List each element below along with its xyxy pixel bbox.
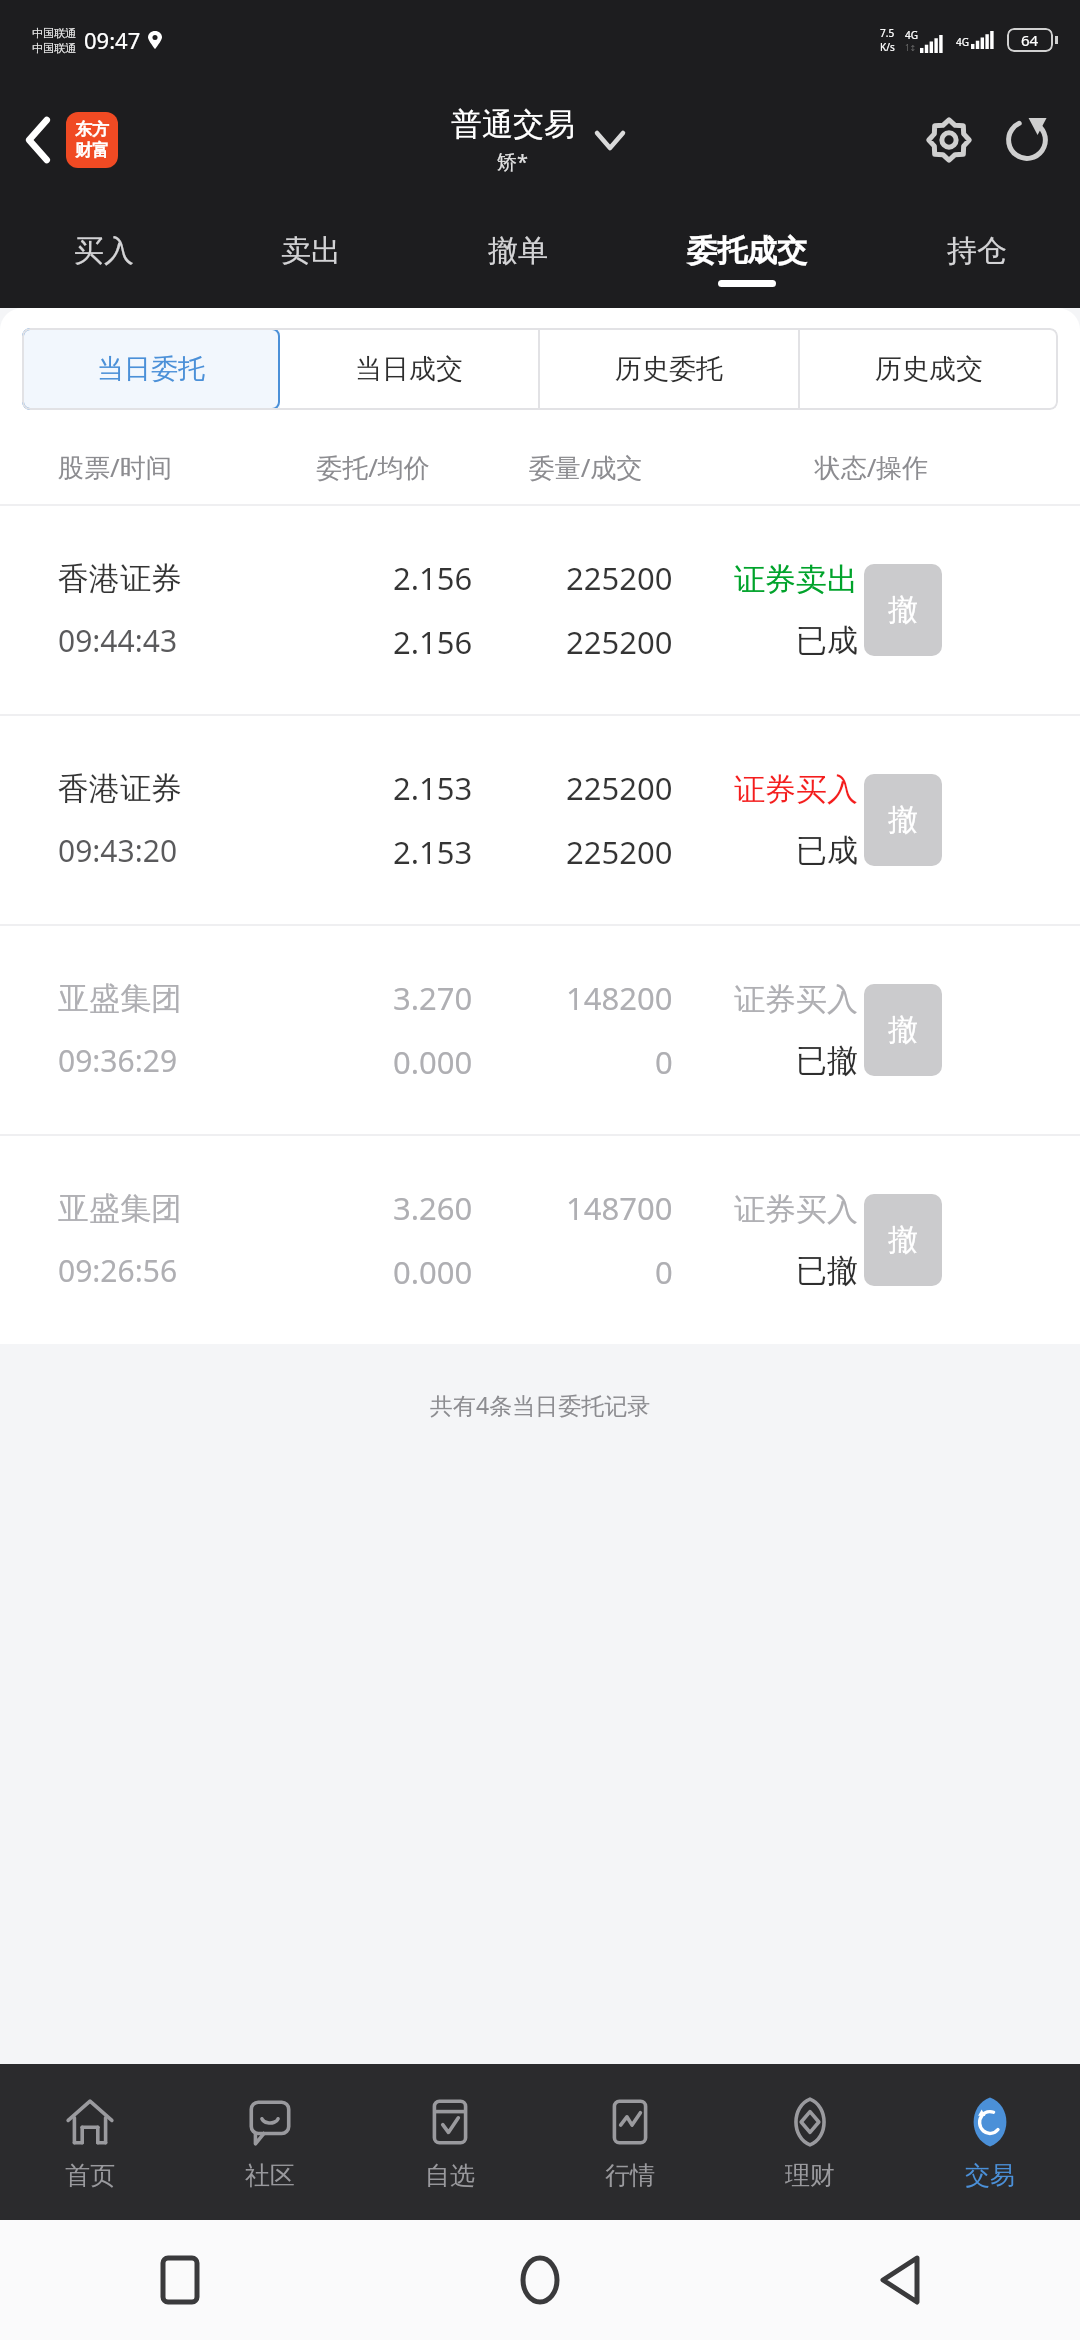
staticText: 卖出 <box>281 232 341 270</box>
button[interactable]: 返回 <box>869 2244 931 2316</box>
button[interactable]: 理财 <box>720 2064 900 2220</box>
staticText: 3.270 <box>393 977 473 1019</box>
button[interactable]: 当日委托 <box>22 328 280 410</box>
staticText: 委量/成交 <box>478 449 693 485</box>
staticText: 09:44:43 <box>58 620 178 661</box>
staticText: 中国联通 <box>32 41 76 55</box>
staticText: 0 <box>655 1251 673 1293</box>
staticText: 1↕ <box>905 42 917 53</box>
staticText: 3.260 <box>393 1187 473 1229</box>
staticText: 行情 <box>605 2160 655 2191</box>
staticText: 矫* <box>497 148 529 175</box>
staticText: 0.000 <box>393 1041 473 1083</box>
staticText: 09:43:20 <box>58 830 178 871</box>
staticText: 股票/时间 <box>58 449 268 485</box>
button[interactable]: 当日成交 <box>280 328 538 410</box>
button[interactable]: 历史委托 <box>540 328 798 410</box>
staticText: 已撤 <box>796 1041 858 1080</box>
staticText: 历史成交 <box>875 352 983 386</box>
button[interactable]: 香港证券 <box>0 506 1080 714</box>
button[interactable]: 社区 <box>180 2064 360 2220</box>
button[interactable]: 买入 <box>0 200 207 308</box>
staticText: 已成 <box>796 831 858 870</box>
staticText: 2.156 <box>393 621 473 663</box>
staticText: 东方 <box>75 119 109 140</box>
staticText: 0.000 <box>393 1251 473 1293</box>
staticText: 148700 <box>566 1187 673 1229</box>
button[interactable]: 最近任务 <box>149 2244 211 2316</box>
button[interactable]: 首页 <box>0 2064 180 2220</box>
button[interactable]: 自选 <box>360 2064 540 2220</box>
button[interactable]: 行情 <box>540 2064 720 2220</box>
staticText: 撤 <box>888 591 918 629</box>
staticText: 委托/均价 <box>268 449 478 485</box>
staticText: 当日委托 <box>97 352 205 386</box>
staticText: 撤单 <box>488 232 548 270</box>
staticText: 撤 <box>888 1011 918 1049</box>
staticText: 状态/操作 <box>693 449 1050 485</box>
button[interactable]: 撤单 <box>414 200 621 308</box>
staticText: 证券买入 <box>734 1190 858 1229</box>
button[interactable]: 亚盛集团 <box>0 926 1080 1134</box>
button[interactable]: 刷新 <box>998 111 1056 169</box>
button[interactable]: 持仓 <box>873 200 1080 308</box>
staticText: 4G <box>956 35 969 49</box>
staticText: 证券买入 <box>734 770 858 809</box>
button[interactable]: 撤 <box>864 564 942 656</box>
staticText: 已成 <box>796 621 858 660</box>
button[interactable]: 切换账户 <box>591 127 629 154</box>
staticText: 财富 <box>75 140 109 161</box>
button[interactable]: 撤 <box>864 774 942 866</box>
staticText: 225200 <box>566 557 673 599</box>
staticText: 09:26:56 <box>58 1250 178 1291</box>
staticText: 历史委托 <box>615 352 723 386</box>
staticText: 2.153 <box>393 831 473 873</box>
button[interactable]: 卖出 <box>207 200 414 308</box>
button[interactable]: 撤 <box>864 984 942 1076</box>
staticText: K/s <box>880 40 895 54</box>
staticText: 当日成交 <box>355 352 463 386</box>
staticText: 委托成交 <box>687 232 807 270</box>
staticText: 09:36:29 <box>58 1040 178 1081</box>
staticText: 共有4条当日委托记录 <box>430 1389 651 1420</box>
staticText: 225200 <box>566 767 673 809</box>
button[interactable]: 交易 <box>900 2064 1080 2220</box>
button[interactable]: 设置 <box>920 111 978 169</box>
button[interactable]: 历史成交 <box>800 328 1058 410</box>
staticText: 0 <box>655 1041 673 1083</box>
staticText: 理财 <box>785 2160 835 2191</box>
staticText: 社区 <box>245 2160 295 2191</box>
staticText: 亚盛集团 <box>58 1189 182 1228</box>
button[interactable]: 委托成交 <box>621 200 873 308</box>
button[interactable]: 撤 <box>864 1194 942 1286</box>
staticText: 香港证券 <box>58 559 182 598</box>
staticText: 4G <box>905 28 918 42</box>
staticText: 225200 <box>566 831 673 873</box>
button[interactable]: 主页 <box>509 2244 571 2316</box>
staticText: 148200 <box>566 977 673 1019</box>
staticText: 225200 <box>566 621 673 663</box>
staticText: 撤 <box>888 801 918 839</box>
staticText: 2.153 <box>393 767 473 809</box>
staticText: 撤 <box>888 1221 918 1259</box>
staticText: 证券卖出 <box>734 560 858 599</box>
staticText: 首页 <box>65 2160 115 2191</box>
staticText: 已撤 <box>796 1251 858 1290</box>
staticText: 香港证券 <box>58 769 182 808</box>
staticText: 7.5 <box>880 26 895 40</box>
button[interactable]: 返回 <box>18 104 126 176</box>
staticText: 普通交易 <box>451 105 575 144</box>
staticText: 亚盛集团 <box>58 979 182 1018</box>
button[interactable]: 香港证券 <box>0 716 1080 924</box>
staticText: 中国联通 <box>32 26 76 40</box>
staticText: 64 <box>1021 30 1039 50</box>
staticText: 交易 <box>965 2160 1015 2191</box>
staticText: 自选 <box>425 2160 475 2191</box>
staticText: 持仓 <box>947 232 1007 270</box>
staticText: 证券买入 <box>734 980 858 1019</box>
button[interactable]: 亚盛集团 <box>0 1136 1080 1344</box>
staticText: 2.156 <box>393 557 473 599</box>
staticText: 买入 <box>74 232 134 270</box>
staticText: 09:47 <box>84 25 141 55</box>
